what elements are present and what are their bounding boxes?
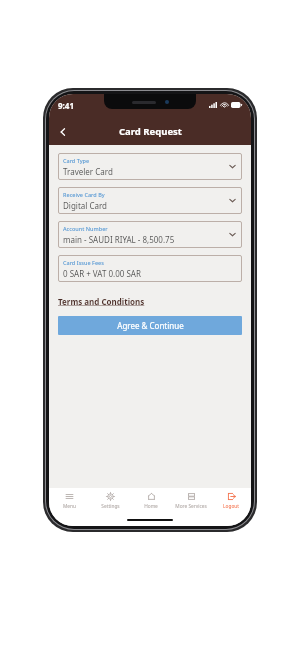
staticText: 9:41 (58, 100, 74, 111)
staticText: Account Number (63, 225, 108, 232)
staticText: Agree & Continue (117, 320, 184, 331)
staticText: 0 SAR + VAT 0.00 SAR (63, 268, 141, 279)
staticText: Receive Card By (63, 191, 105, 198)
button[interactable]: Terms and Conditions (58, 295, 145, 308)
staticText: Card Type (63, 157, 90, 164)
button[interactable]: Settings (90, 488, 131, 514)
staticText: Settings (101, 503, 120, 510)
staticText: More Services (175, 503, 207, 510)
staticText: Card Issue Fees (63, 259, 104, 266)
button[interactable]: Card Type (58, 153, 242, 180)
button[interactable]: Account Number (58, 221, 242, 248)
staticText: Terms and Conditions (58, 296, 145, 307)
button[interactable]: Logout (211, 488, 251, 514)
staticText: Home (144, 503, 158, 510)
button[interactable]: More Services (171, 488, 211, 514)
button[interactable]: Card Issue Fees (58, 255, 242, 282)
button[interactable]: Menu (49, 488, 90, 514)
staticText: Card Request (119, 125, 182, 138)
staticText: Digital Card (63, 200, 108, 211)
staticText: Menu (63, 503, 76, 510)
staticText: main - SAUDI RIYAL - 8,500.75 (63, 234, 175, 245)
button[interactable]: Receive Card By (58, 187, 242, 214)
button[interactable]: Home (131, 488, 171, 514)
staticText: Traveler Card (63, 166, 113, 177)
button[interactable]: Agree & Continue (58, 316, 242, 335)
button[interactable]: Back (49, 118, 76, 145)
staticText: Logout (223, 503, 239, 510)
